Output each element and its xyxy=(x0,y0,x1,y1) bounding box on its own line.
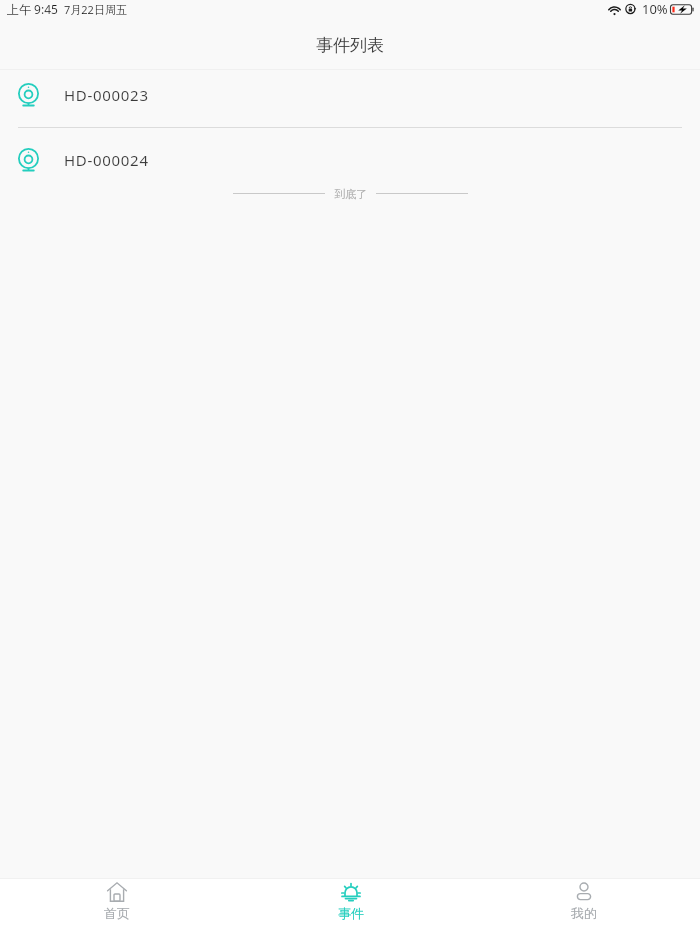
staticText: 事件列表 xyxy=(316,35,384,56)
button[interactable]: Camera xyxy=(0,69,700,127)
staticText: 10% xyxy=(642,0,668,18)
button[interactable]: Camera xyxy=(0,128,700,193)
staticText: 事件 xyxy=(338,905,364,921)
staticText: 上午 9:45 xyxy=(7,1,58,17)
other: Camera xyxy=(18,83,39,107)
staticText: HD-000023 xyxy=(64,85,149,105)
other: Camera xyxy=(18,148,39,172)
button[interactable]: 我的 xyxy=(467,879,700,934)
staticText: 到底了 xyxy=(334,187,367,201)
other: Battery 10%, charging xyxy=(670,4,694,15)
button[interactable]: 首页 xyxy=(0,879,234,934)
other: Auto-rotate locked xyxy=(625,3,637,15)
other: Wi-Fi xyxy=(608,4,621,15)
staticText: 7月22日周五 xyxy=(64,2,127,17)
staticText: HD-000024 xyxy=(64,150,149,170)
staticText: 我的 xyxy=(571,905,597,921)
staticText: 首页 xyxy=(104,905,130,921)
button[interactable]: 事件 xyxy=(234,879,467,934)
